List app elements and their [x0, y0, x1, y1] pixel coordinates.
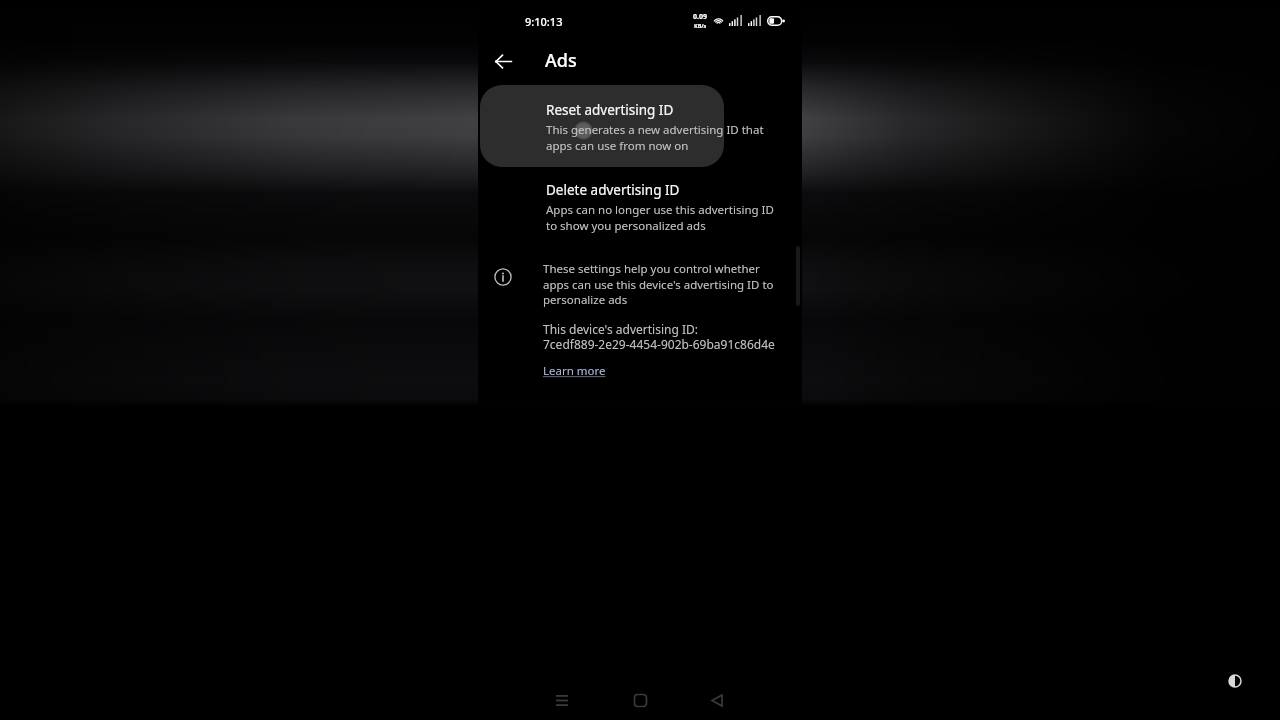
staticText: Delete advertising ID	[546, 181, 680, 199]
button[interactable]: Back	[702, 685, 732, 715]
staticText: Apps can no longer use this advertising …	[546, 202, 788, 233]
staticText: Learn more	[543, 363, 606, 379]
staticText: KB/s	[694, 22, 707, 29]
staticText: This generates a new advertising ID that…	[546, 122, 782, 153]
staticText: 0.09	[693, 12, 707, 22]
button[interactable]: Home	[625, 685, 655, 715]
button[interactable]: Learn more	[543, 363, 606, 379]
button[interactable]: Recent apps	[547, 685, 577, 715]
staticText: These settings help you control whether …	[543, 261, 779, 307]
staticText: Ads	[545, 48, 577, 73]
button[interactable]: Reset advertising ID	[478, 85, 802, 167]
staticText: 9:10:13	[525, 14, 563, 29]
staticText: This device's advertising ID: 7cedf889-2…	[543, 321, 775, 352]
staticText: Reset advertising ID	[546, 101, 674, 119]
button[interactable]: Delete advertising ID	[478, 167, 802, 239]
button[interactable]: Back	[483, 41, 523, 81]
